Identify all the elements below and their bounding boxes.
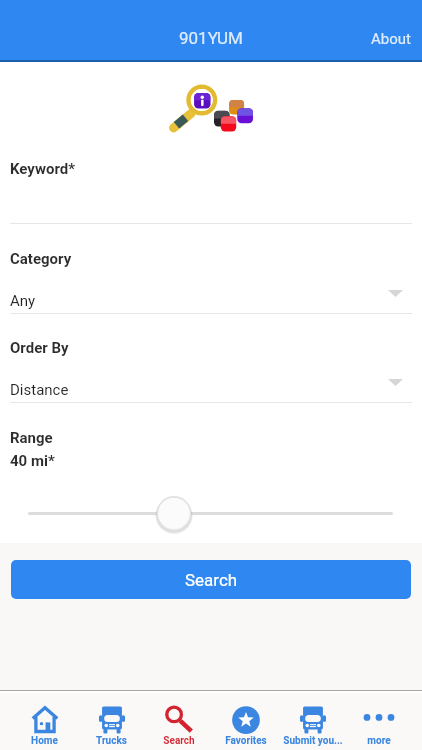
staticText: Order By (10, 339, 69, 357)
other: Home (31, 706, 59, 734)
staticText: Keyword* (10, 160, 75, 178)
button[interactable]: Search (11, 560, 411, 599)
other: More (365, 706, 393, 734)
staticText: Submit you... (283, 735, 343, 747)
other: Search (165, 706, 193, 734)
button[interactable]: Submit your truck (279, 693, 346, 750)
other: Trucks (98, 706, 126, 734)
button[interactable]: Favorites (212, 693, 279, 750)
button[interactable]: Distance (0, 381, 422, 405)
staticText: Favorites (225, 735, 267, 747)
staticText: Trucks (96, 735, 127, 747)
staticText: Category (10, 250, 72, 268)
button[interactable]: Trucks (78, 693, 145, 750)
staticText: Home (31, 735, 58, 747)
staticText: About (371, 30, 411, 48)
staticText: 901YUM (179, 28, 243, 48)
staticText: Search (185, 570, 238, 590)
staticText: Search (163, 735, 195, 747)
button[interactable]: Search (145, 693, 212, 750)
button[interactable]: More (346, 693, 411, 750)
staticText: 40 mi* (10, 452, 55, 470)
button[interactable]: Home (11, 693, 78, 750)
staticText: more (367, 735, 391, 747)
other: Favorites (232, 706, 260, 734)
staticText: Any (10, 292, 36, 310)
staticText: Distance (10, 381, 69, 399)
other: Submit your truck (299, 706, 327, 734)
button[interactable]: About (357, 10, 422, 52)
staticText: Range (10, 429, 53, 447)
button[interactable]: Any (0, 292, 422, 316)
